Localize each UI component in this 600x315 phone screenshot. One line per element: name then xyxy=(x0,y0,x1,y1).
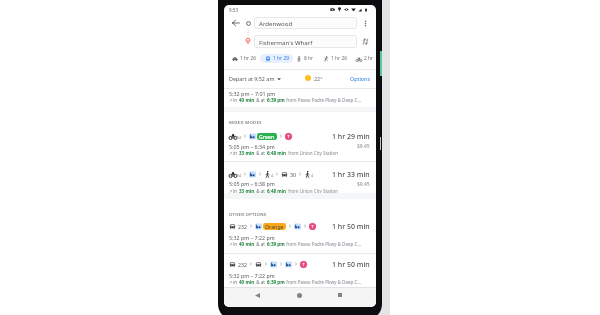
staticText: 6:39 pm xyxy=(267,241,285,247)
staticText: 5:32 pm – 7:22 pm xyxy=(229,234,275,241)
button[interactable]: 1 hr 26 xyxy=(319,54,351,63)
button[interactable]: 1 hr 29 xyxy=(260,54,293,63)
staticText: 30 xyxy=(290,171,296,178)
staticText: $9.45 xyxy=(357,181,370,188)
staticText: 1 hr 26 xyxy=(240,55,256,62)
staticText: from Union City Station xyxy=(287,188,339,194)
staticText: MIXED MODES xyxy=(229,119,262,125)
button[interactable]: Ardenwood xyxy=(254,17,357,29)
staticText: 4 xyxy=(311,173,313,178)
staticText: & at xyxy=(255,188,267,194)
staticText: 40 min xyxy=(239,241,255,247)
staticText: Green xyxy=(259,133,275,140)
staticText: 22° xyxy=(314,75,323,82)
staticText: & at xyxy=(255,279,267,285)
button[interactable]: More options xyxy=(358,16,372,30)
staticText: 33 min xyxy=(239,150,255,156)
button[interactable]: Recent apps xyxy=(336,291,344,299)
button[interactable]: 5:32 pm – 7:01 pm xyxy=(224,87,376,108)
staticText: 5:32 pm – 7:01 pm xyxy=(229,90,276,97)
staticText: 33 min xyxy=(239,188,255,194)
button[interactable]: Home xyxy=(295,291,303,299)
staticText: 6:48 min xyxy=(267,150,287,156)
staticText: from Paseo Padre Pkwy & Deep C… xyxy=(285,279,361,285)
staticText: & at xyxy=(255,97,267,103)
staticText: & at xyxy=(255,241,267,247)
staticText: Ardenwood xyxy=(259,19,293,27)
staticText: Fisherman's Wharf xyxy=(259,38,313,46)
staticText: 5:05 pm – 6:34 pm xyxy=(229,143,275,150)
staticText: 1 hr 33 min xyxy=(332,170,370,180)
staticText: 4 xyxy=(271,173,273,178)
staticText: 14 xyxy=(237,135,241,140)
staticText: OTHER OPTIONS xyxy=(229,211,267,217)
staticText: from Union City Station xyxy=(287,150,339,156)
staticText: 1 hr 50 min xyxy=(332,222,370,232)
staticText: 6:48 min xyxy=(267,188,287,194)
staticText: 2 hr xyxy=(364,55,374,62)
staticText: $9.45 xyxy=(357,143,370,150)
staticText: in xyxy=(232,279,239,285)
staticText: 5:32 pm – 7:22 pm xyxy=(229,272,275,279)
button[interactable]: 14 xyxy=(224,127,376,154)
staticText: 1 hr 26 xyxy=(331,55,347,62)
button[interactable]: Swap route xyxy=(358,34,372,48)
staticText: 232 xyxy=(238,223,247,230)
button[interactable]: 8 hr xyxy=(293,54,317,63)
button[interactable]: 232 xyxy=(224,255,376,282)
staticText: in xyxy=(232,241,239,247)
staticText: 5:05 pm – 6:38 pm xyxy=(229,180,275,187)
button[interactable]: 232 xyxy=(224,217,376,244)
button[interactable]: Depart at 9:52 am xyxy=(229,74,281,83)
staticText: from Paseo Padre Pkwy & Deep C… xyxy=(285,241,361,247)
button[interactable]: 1 hr 26 xyxy=(228,54,260,63)
staticText: 1 hr 29 min xyxy=(332,132,370,142)
staticText: Options xyxy=(350,75,371,82)
staticText: in xyxy=(232,97,239,103)
staticText: 9:53 xyxy=(229,7,239,13)
staticText: & at xyxy=(255,150,267,156)
staticText: 40 min xyxy=(239,279,255,285)
staticText: 8 hr xyxy=(304,55,314,62)
button[interactable]: Back xyxy=(253,291,261,299)
staticText: 232 xyxy=(238,261,247,268)
button[interactable]: Fisherman's Wharf xyxy=(254,35,357,48)
button[interactable]: Back xyxy=(228,15,244,31)
staticText: in xyxy=(232,188,239,194)
staticText: from Paseo Padre Pkwy & Deep C… xyxy=(285,97,361,103)
button[interactable]: 14 xyxy=(224,165,376,192)
staticText: 1 hr 50 min xyxy=(332,260,370,270)
staticText: 40 min xyxy=(239,97,255,103)
button[interactable]: Options xyxy=(350,74,371,83)
staticText: Orange xyxy=(265,223,284,230)
staticText: 6:39 pm xyxy=(267,279,285,285)
staticText: 14 xyxy=(237,173,241,178)
staticText: 1 hr 29 xyxy=(273,55,289,62)
staticText: in xyxy=(232,150,239,156)
staticText: 6:39 pm xyxy=(267,97,285,103)
staticText: Depart at 9:52 am xyxy=(229,75,275,82)
button[interactable]: 2 hr xyxy=(352,54,376,63)
